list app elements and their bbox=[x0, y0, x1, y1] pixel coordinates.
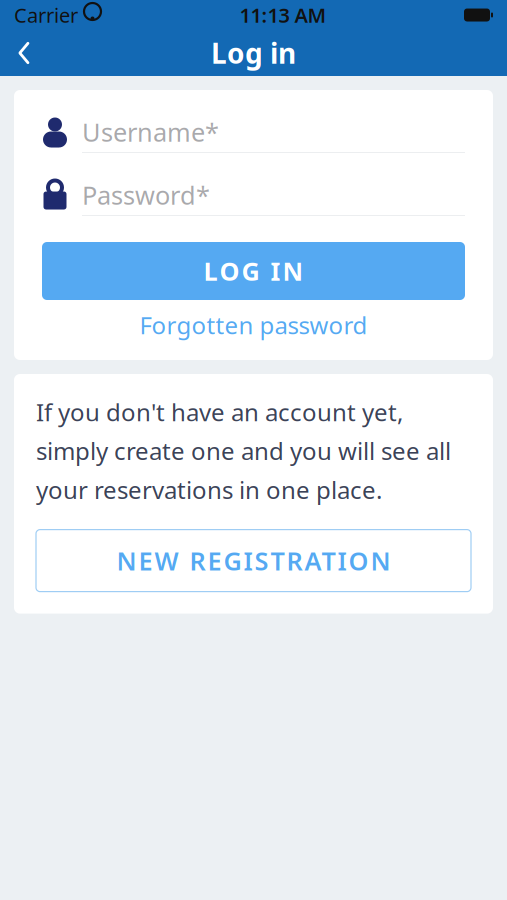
button[interactable]: Back bbox=[0, 30, 48, 76]
staticText: Log in bbox=[211, 34, 296, 72]
button[interactable]: Forgotten password bbox=[42, 304, 465, 346]
staticText: If you don't have an account yet, simply… bbox=[36, 396, 451, 506]
button[interactable]: NEW REGISTRATION bbox=[36, 530, 471, 592]
staticText: 11:13 AM bbox=[239, 2, 326, 28]
staticText: NEW REGISTRATION bbox=[116, 544, 390, 577]
staticText: Forgotten password bbox=[139, 309, 367, 341]
staticText: Password* bbox=[82, 178, 210, 212]
staticText: Carrier bbox=[14, 2, 78, 28]
staticText: LOG IN bbox=[203, 254, 303, 288]
button[interactable]: LOG IN bbox=[42, 242, 465, 300]
staticText: Username* bbox=[82, 115, 219, 149]
